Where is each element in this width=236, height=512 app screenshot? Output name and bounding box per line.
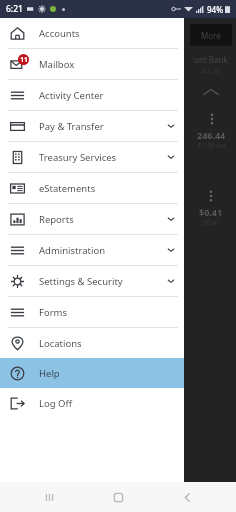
button[interactable]: Settings & Security (0, 266, 184, 296)
staticText: Accounts (39, 27, 80, 40)
staticText: 11 (20, 55, 28, 64)
button[interactable]: Home (98, 482, 138, 512)
button[interactable]: Log Off (0, 388, 184, 418)
button[interactable]: Accounts (0, 18, 184, 48)
button[interactable]: Back (167, 482, 207, 512)
button[interactable]: Pay & Transfer (0, 111, 184, 141)
staticText: unt Bank (194, 54, 228, 65)
staticText: Treasury Services (39, 151, 117, 164)
staticText: $0.41 (199, 206, 223, 218)
staticText: Mailbox (39, 58, 75, 71)
staticText: More (201, 30, 221, 41)
staticText: Forms (39, 306, 68, 319)
staticText: 4U-36 (201, 67, 221, 77)
button[interactable]: Recents (29, 482, 69, 512)
staticText: 246.44 (197, 129, 226, 141)
staticText: $0.41 (203, 218, 220, 227)
button[interactable]: eStatements (0, 173, 184, 203)
staticText: Activity Center (39, 89, 104, 102)
staticText: Locations (39, 337, 82, 350)
staticText: Settings & Security (39, 275, 123, 288)
staticText: eStatements (39, 182, 96, 195)
button[interactable]: Reports (0, 204, 184, 234)
staticText: Pay & Transfer (39, 120, 104, 133)
button[interactable]: More (190, 24, 232, 46)
button[interactable]: 11 (0, 49, 184, 79)
button[interactable]: Activity Center (0, 80, 184, 110)
staticText: Reports (39, 213, 74, 226)
staticText: 94% (207, 4, 223, 15)
staticText: Log Off (39, 397, 72, 410)
button[interactable]: Treasury Services (0, 142, 184, 172)
staticText: Help (39, 367, 60, 380)
button[interactable]: Locations (0, 328, 184, 358)
button[interactable]: Help (0, 358, 184, 388)
staticText: 6:21 (6, 3, 23, 15)
button[interactable]: Forms (0, 297, 184, 327)
staticText: Administration (39, 244, 106, 257)
button[interactable]: Administration (0, 235, 184, 265)
staticText: $5.56 Avl (198, 141, 226, 150)
